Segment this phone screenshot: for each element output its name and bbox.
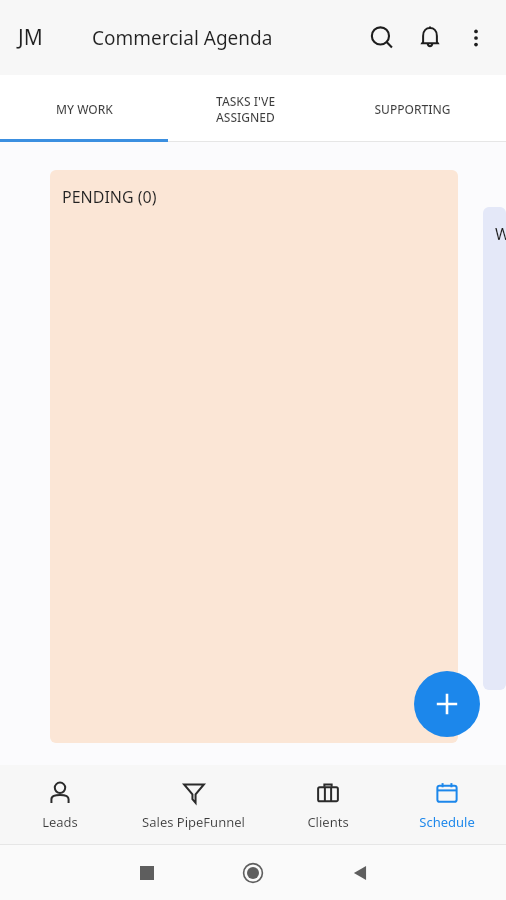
staticText: Clients	[307, 813, 349, 831]
staticText: PENDING (0)	[62, 186, 157, 208]
staticText: JM	[18, 23, 43, 52]
button[interactable]: Clients	[268, 765, 387, 845]
button[interactable]: TASKS I'VE ASSIGNED	[168, 75, 318, 142]
button[interactable]: Back	[340, 853, 380, 893]
staticText: Leads	[42, 813, 78, 831]
staticText: Schedule	[419, 813, 475, 831]
staticText: Sales PipeFunnel	[142, 813, 245, 831]
staticText: SUPPORTING	[374, 101, 451, 117]
staticText: TASKS I'VE ASSIGNED	[216, 93, 276, 125]
button[interactable]: Search	[358, 14, 406, 62]
staticText: W	[495, 223, 506, 245]
button[interactable]: SUPPORTING	[318, 75, 506, 142]
button[interactable]: PENDING (0)	[50, 170, 458, 743]
button[interactable]: Schedule	[387, 765, 506, 845]
button[interactable]: MY WORK	[0, 75, 168, 142]
button[interactable]: Sales PipeFunnel	[119, 765, 268, 845]
button[interactable]: More options	[454, 16, 498, 60]
button[interactable]: Leads	[0, 765, 119, 845]
button[interactable]: Add	[414, 671, 480, 737]
staticText: Commercial Agenda	[92, 25, 273, 51]
button[interactable]: W	[483, 207, 506, 690]
button[interactable]: Home	[233, 853, 273, 893]
button[interactable]: Recent apps	[127, 853, 167, 893]
staticText: MY WORK	[56, 101, 113, 117]
button[interactable]: Notifications	[406, 14, 454, 62]
